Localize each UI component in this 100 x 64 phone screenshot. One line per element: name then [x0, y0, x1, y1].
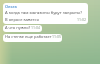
staticText: 11:02: [77, 17, 86, 22]
staticText: А что нужно?: [5, 25, 31, 30]
staticText: 11:05: [52, 34, 61, 39]
staticText: На стенке еще работает: [5, 34, 52, 39]
button[interactable]: На стенке еще работает: [3, 34, 62, 42]
staticText: В опросе кажется: [5, 17, 39, 22]
button[interactable]: Ольга: [3, 3, 88, 24]
staticText: Ольга: [5, 4, 17, 9]
staticText: А когда там магазины будут закрыты?: [5, 10, 83, 16]
staticText: 11:04: [31, 25, 40, 30]
button[interactable]: А что нужно?: [3, 25, 42, 32]
